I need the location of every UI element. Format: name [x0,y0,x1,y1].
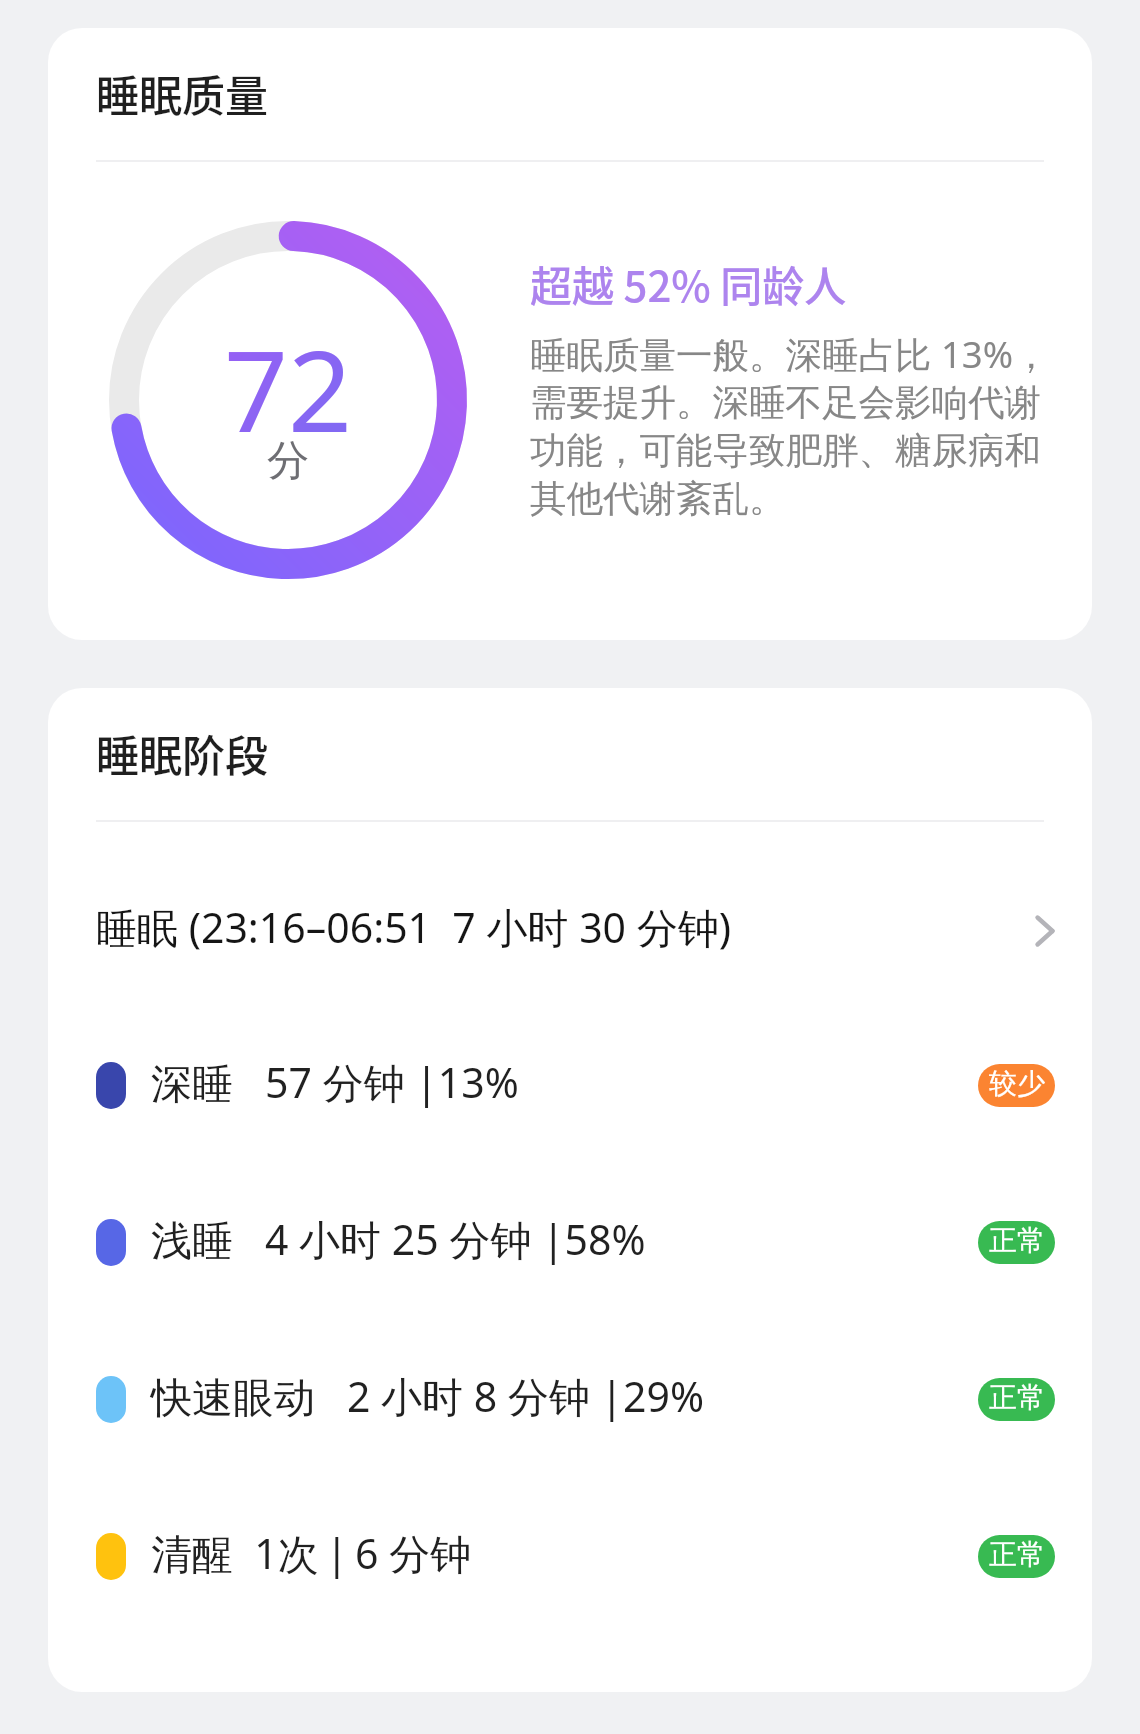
staticText: 正常 [989,1228,1045,1258]
staticText: 分 [267,435,309,488]
button[interactable]: 较少 [978,1064,1055,1107]
button[interactable]: 正常 [978,1221,1055,1264]
staticText: 睡眠阶段 [96,722,268,784]
other: Open sleep details [1035,915,1055,947]
button[interactable]: 正常 [978,1535,1055,1578]
button[interactable]: 浅睡 4 小时 25 分钟 |58% [96,1164,1055,1321]
staticText: 正常 [989,1542,1045,1572]
staticText: 72 [224,312,353,465]
button[interactable]: 睡眠 (23:16–06:51 7 小时 30 分钟) [96,888,1055,974]
button[interactable]: 正常 [978,1378,1055,1421]
staticText: 清醒 1次 | 6 分钟 [151,1533,472,1581]
staticText: 较少 [989,1071,1045,1101]
staticText: 快速眼动 2 小时 8 分钟 |29% [151,1376,705,1424]
button[interactable]: 清醒 1次 | 6 分钟 [96,1478,1055,1635]
staticText: 正常 [989,1385,1045,1415]
staticText: 超越 52% 同龄人 [530,264,847,312]
button[interactable]: 深睡 57 分钟 |13% [96,1007,1055,1164]
staticText: 深睡 57 分钟 |13% [151,1062,519,1110]
button[interactable]: 快速眼动 2 小时 8 分钟 |29% [96,1321,1055,1478]
staticText: 睡眠质量一般。深睡占比 13%，需要提升。深睡不足会影响代谢功能，可能导致肥胖、… [530,331,1052,524]
staticText: 浅睡 4 小时 25 分钟 |58% [151,1219,646,1267]
staticText: 睡眠 (23:16–06:51 7 小时 30 分钟) [96,907,732,955]
staticText: 睡眠质量 [96,62,268,124]
